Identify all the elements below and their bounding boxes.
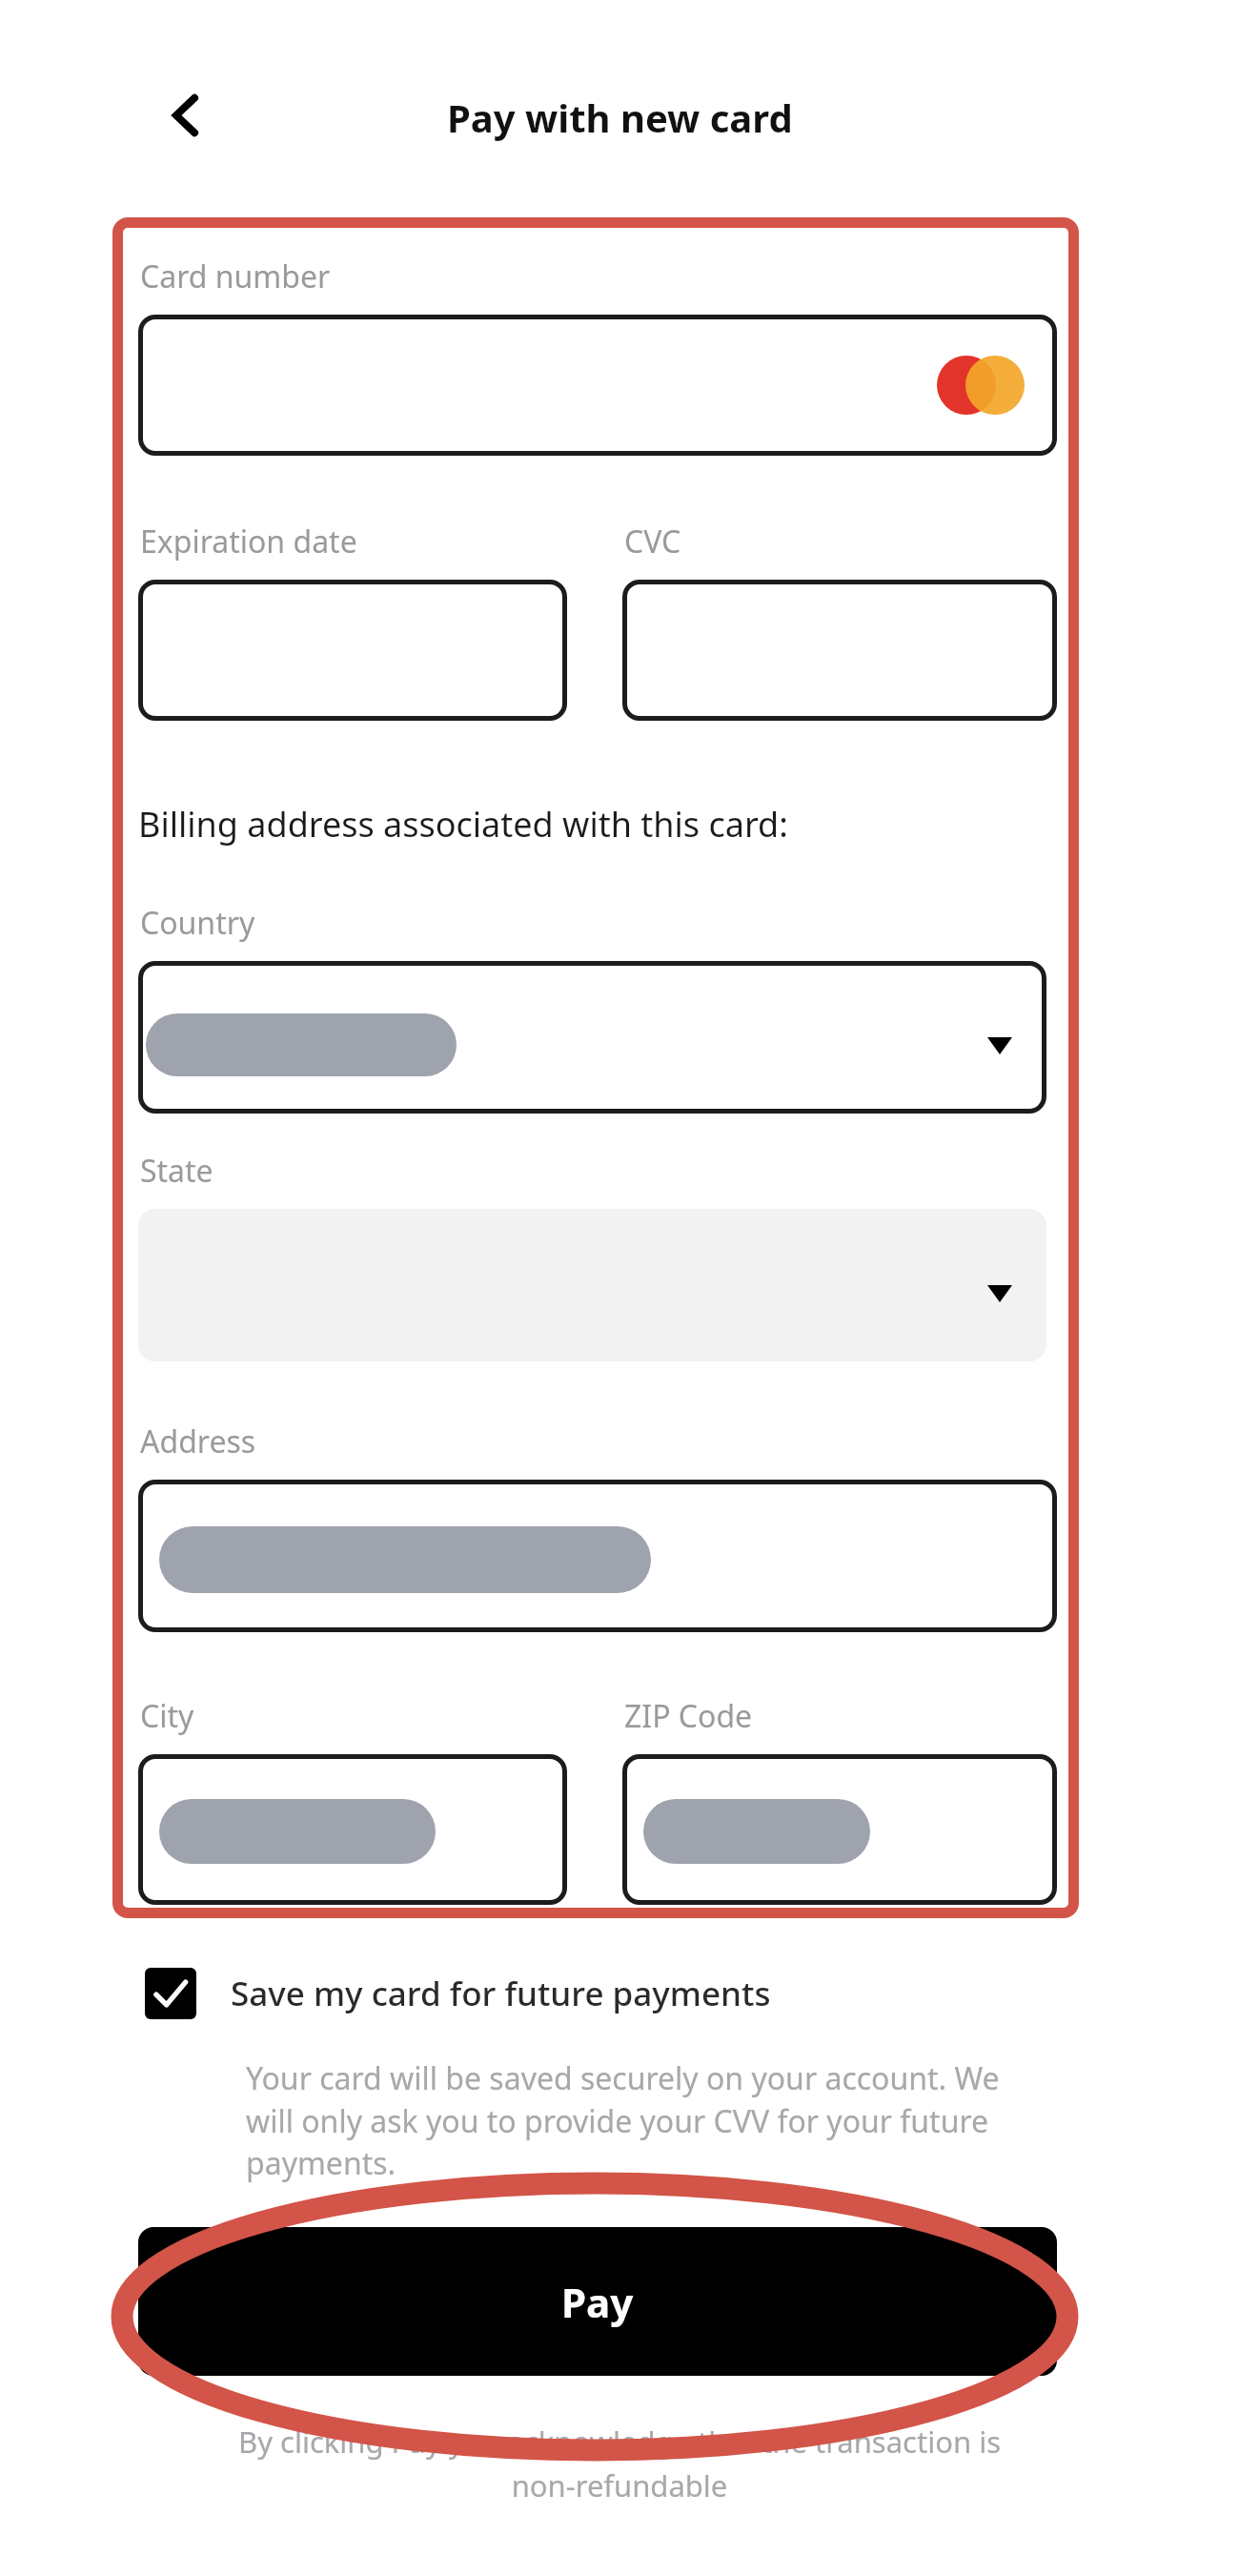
button[interactable] [138, 1480, 1057, 1632]
staticText: Pay [561, 2275, 634, 2329]
button[interactable]: Save my card for future payments [145, 1968, 1003, 2019]
staticText: Save my card for future payments [231, 1971, 771, 2016]
staticText: Country [140, 902, 255, 944]
button[interactable] [138, 1209, 1046, 1361]
staticText: Expiration date [140, 521, 357, 562]
button[interactable] [138, 580, 567, 721]
staticText: Billing address associated with this car… [138, 801, 788, 848]
button[interactable] [138, 961, 1046, 1114]
staticText: By clicking Pay you acknowledge that the… [219, 2422, 1020, 2505]
staticText: Your card will be saved securely on your… [246, 2057, 1046, 2183]
button[interactable] [622, 580, 1057, 721]
staticText: Card number [140, 256, 331, 297]
button[interactable]: Back [145, 74, 227, 156]
staticText: State [140, 1150, 213, 1192]
staticText: Address [140, 1421, 256, 1462]
staticText: ZIP Code [624, 1695, 753, 1737]
staticText: Pay with new card [447, 92, 793, 143]
button[interactable]: Pay [138, 2227, 1057, 2376]
staticText: City [140, 1695, 194, 1737]
staticText: CVC [624, 521, 681, 562]
button[interactable] [622, 1754, 1057, 1905]
button[interactable] [138, 315, 1057, 456]
button[interactable] [138, 1754, 567, 1905]
